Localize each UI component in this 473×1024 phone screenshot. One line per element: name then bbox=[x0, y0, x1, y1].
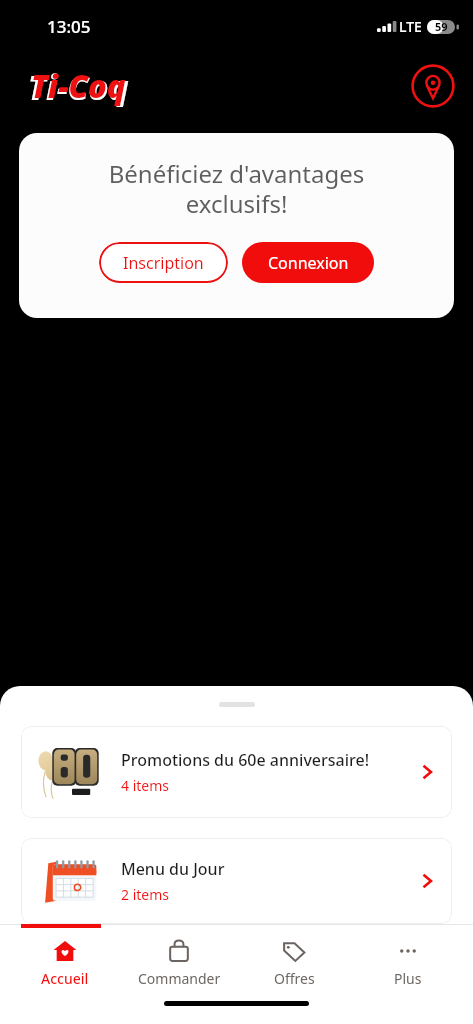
staticText: Accueil bbox=[41, 969, 89, 988]
button[interactable]: Offres bbox=[244, 936, 344, 990]
staticText: Ti-Coq bbox=[31, 65, 126, 107]
button[interactable]: Ti-Coq home bbox=[26, 65, 130, 107]
button[interactable]: Find a restaurant bbox=[411, 64, 455, 108]
staticText: Plus bbox=[394, 969, 422, 988]
button[interactable]: Promotions du 60e anniversaire! bbox=[21, 726, 452, 818]
staticText: Offres bbox=[274, 969, 315, 988]
staticText: Ti-Coq bbox=[28, 65, 129, 107]
button[interactable]: Inscription bbox=[99, 242, 228, 283]
button[interactable]: Accueil bbox=[15, 936, 115, 990]
staticText: Bénéficiez d'avantages exclusifs! bbox=[19, 157, 454, 220]
staticText: LTE bbox=[399, 17, 422, 36]
staticText: 59 bbox=[435, 19, 448, 34]
staticText: Commander bbox=[138, 969, 221, 988]
button[interactable]: Menu du Jour bbox=[21, 838, 452, 924]
staticText: Promotions du 60e anniversaire! bbox=[121, 749, 370, 771]
button[interactable]: Plus bbox=[358, 936, 458, 990]
staticText: 4 items bbox=[121, 776, 170, 795]
button[interactable]: Connexion bbox=[242, 242, 374, 283]
staticText: Inscription bbox=[123, 252, 204, 274]
button[interactable]: Commander bbox=[129, 936, 229, 990]
staticText: Connexion bbox=[268, 252, 349, 274]
staticText: Menu du Jour bbox=[121, 858, 225, 880]
staticText: 13:05 bbox=[47, 15, 91, 38]
staticText: 2 items bbox=[121, 885, 170, 904]
